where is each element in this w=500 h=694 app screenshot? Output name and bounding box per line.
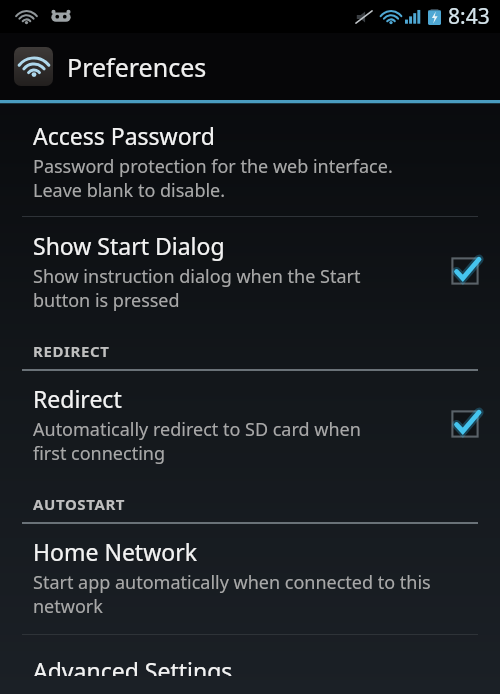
button[interactable]: Redirect	[0, 371, 500, 481]
staticText: Start app automatically when connected t…	[33, 570, 431, 618]
staticText: Advanced Settings	[33, 655, 233, 676]
staticText: Show instruction dialog when the Start b…	[33, 264, 361, 312]
button[interactable]: Home Network	[0, 524, 500, 634]
staticText: Show Start Dialog	[33, 230, 225, 261]
button[interactable]: Access Password	[0, 104, 500, 216]
staticText: Password protection for the web interfac…	[33, 154, 393, 202]
staticText: 8:43	[448, 2, 490, 31]
button[interactable]: Advanced Settings	[0, 635, 500, 694]
button[interactable]: Show Start Dialog	[0, 217, 500, 328]
button[interactable]: Preferences	[0, 33, 500, 100]
staticText: Preferences	[67, 50, 207, 84]
staticText: Access Password	[33, 120, 215, 151]
staticText: REDIRECT	[33, 341, 110, 361]
staticText: Automatically redirect to SD card when f…	[33, 417, 361, 465]
button[interactable]: Toggle setting	[448, 407, 482, 441]
staticText: Home Network	[33, 536, 197, 567]
button[interactable]: Toggle setting	[448, 254, 482, 288]
staticText: AUTOSTART	[33, 494, 126, 514]
staticText: Redirect	[33, 383, 122, 414]
